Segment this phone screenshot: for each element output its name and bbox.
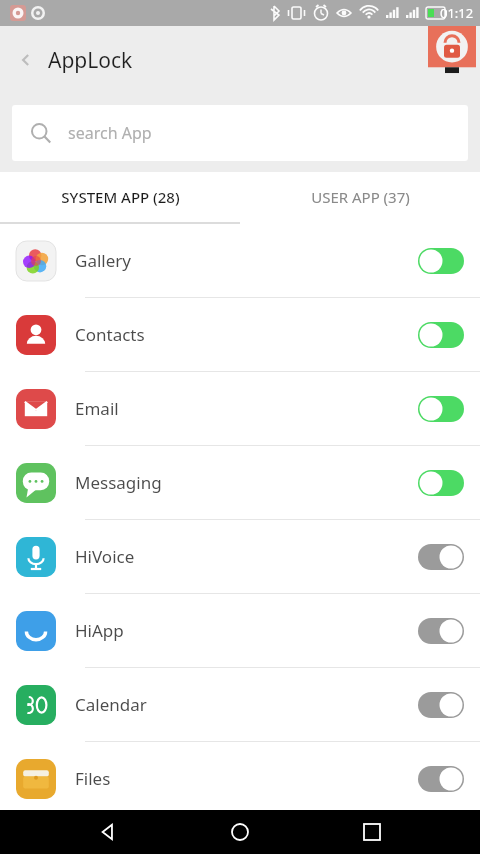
button[interactable]: Lock Calendar (418, 692, 464, 718)
button[interactable]: Back (84, 810, 132, 854)
staticText: Calendar (75, 693, 147, 716)
button[interactable]: Contacts (0, 298, 480, 371)
button[interactable]: Messaging (0, 446, 480, 519)
button[interactable]: Home (216, 810, 264, 854)
button[interactable]: Lock Messaging (418, 470, 464, 496)
staticText: Email (75, 397, 119, 420)
button[interactable]: Recent apps (348, 810, 396, 854)
button[interactable]: Back (8, 42, 44, 78)
staticText: SYSTEM APP (28) (61, 187, 180, 207)
button[interactable]: Lock HiApp (418, 618, 464, 644)
button[interactable]: Lock Contacts (418, 322, 464, 348)
button[interactable]: Lock Files (418, 766, 464, 792)
staticText: Messaging (75, 471, 162, 494)
button[interactable]: HiApp (0, 594, 480, 667)
staticText: Contacts (75, 323, 145, 346)
button[interactable]: Lock HiVoice (418, 544, 464, 570)
button[interactable]: search App (12, 105, 468, 161)
button[interactable]: Lock Email (418, 396, 464, 422)
button[interactable]: USER APP (37) (240, 172, 480, 222)
staticText: HiApp (75, 619, 124, 642)
staticText: Gallery (75, 249, 131, 272)
button[interactable]: Gallery (0, 224, 480, 297)
staticText: USER APP (37) (311, 187, 410, 207)
button[interactable]: Files (0, 742, 480, 815)
staticText: HiVoice (75, 545, 135, 568)
button[interactable]: SYSTEM APP (28) (0, 172, 240, 222)
staticText: AppLock (48, 46, 133, 75)
button[interactable]: Calendar (0, 668, 480, 741)
staticText: 01:12 (440, 4, 474, 22)
button[interactable]: Lock Gallery (418, 248, 464, 274)
staticText: Files (75, 767, 111, 790)
staticText: search App (68, 122, 152, 144)
button[interactable]: HiVoice (0, 520, 480, 593)
button[interactable]: AppLock settings (428, 26, 476, 74)
button[interactable]: Email (0, 372, 480, 445)
